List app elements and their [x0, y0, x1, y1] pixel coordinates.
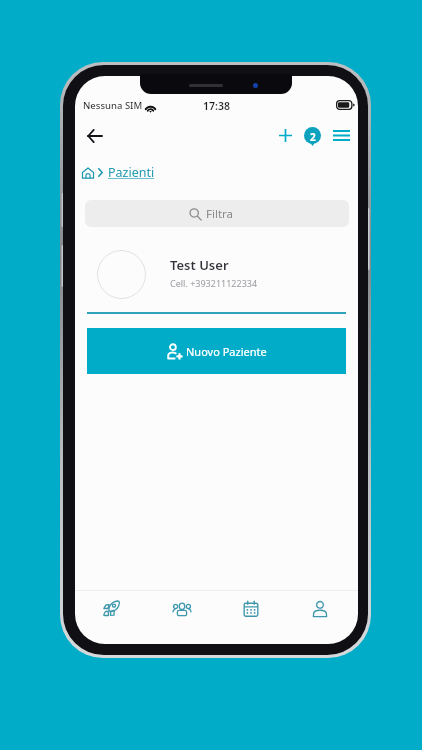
button[interactable]: Back — [82, 123, 107, 148]
button[interactable]: Messages, 2 unread — [300, 122, 325, 147]
staticText: 17:38 — [203, 99, 230, 113]
button[interactable]: Menu — [329, 123, 354, 148]
staticText: Nessuna SIM — [83, 99, 143, 112]
button[interactable]: Nuovo Paziente — [87, 328, 346, 374]
button[interactable]: Pazienti — [108, 164, 155, 181]
staticText: Filtra — [206, 206, 234, 222]
staticText: Nuovo Paziente — [186, 344, 267, 359]
staticText: Cell. +393211122334 — [170, 277, 258, 289]
button[interactable]: Profile — [295, 593, 345, 625]
button[interactable]: Add — [273, 123, 298, 148]
button[interactable]: Calendar — [226, 593, 276, 625]
button[interactable]: Home — [82, 167, 94, 179]
staticText: 2 — [310, 130, 316, 144]
button[interactable]: Dashboard — [87, 593, 137, 625]
button[interactable]: Test User — [85, 244, 349, 304]
button[interactable]: Patients — [157, 593, 207, 625]
staticText: Test User — [170, 256, 229, 274]
button[interactable]: Filtra — [85, 200, 349, 227]
